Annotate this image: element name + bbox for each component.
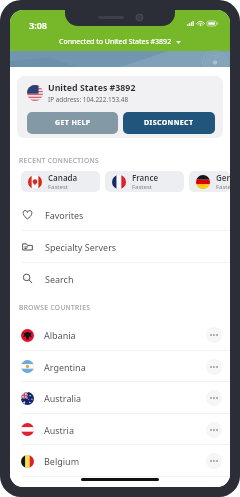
staticText: Fastest <box>216 183 230 191</box>
staticText: DISCONNECT <box>144 118 194 128</box>
button[interactable]: Connected to United States #3892 <box>59 37 181 47</box>
staticText: Fastest <box>48 183 68 191</box>
button[interactable]: More options for Argentina <box>206 359 222 375</box>
button[interactable]: More options for Albania <box>206 327 222 343</box>
staticText: Belgium <box>44 455 80 467</box>
button[interactable]: More options for Belgium <box>206 453 222 469</box>
button[interactable]: Favorites <box>10 199 230 230</box>
button[interactable]: Albania <box>10 319 230 351</box>
staticText: France <box>132 172 159 183</box>
button[interactable]: DISCONNECT <box>123 112 215 134</box>
staticText: Australia <box>44 392 82 404</box>
button[interactable]: France <box>105 171 184 192</box>
staticText: Canada <box>48 172 78 183</box>
button[interactable]: Argentina <box>10 351 230 382</box>
staticText: Specialty Servers <box>45 241 117 253</box>
button[interactable]: More options for Austria <box>206 422 222 438</box>
staticText: Albania <box>44 329 76 341</box>
button[interactable]: United States #3892 <box>17 76 223 138</box>
staticText: Fastest <box>132 183 152 191</box>
staticText: Austria <box>44 424 74 436</box>
staticText: IP address: 104.222.153.48 <box>48 95 129 104</box>
staticText: 3:08 <box>29 19 47 31</box>
staticText: Search <box>45 273 74 285</box>
staticText: BROWSE COUNTRIES <box>19 303 91 312</box>
button[interactable]: Canada <box>21 171 100 192</box>
button[interactable]: Belgium <box>10 445 230 477</box>
staticText: Connected to United States #3892 <box>59 37 172 47</box>
staticText: Argentina <box>44 361 86 373</box>
button[interactable]: Germany <box>189 171 230 192</box>
button[interactable]: Search <box>10 263 230 294</box>
staticText: Germany <box>216 172 230 183</box>
staticText: RECENT CONNECTIONS <box>19 156 99 165</box>
button[interactable]: GET HELP <box>27 112 118 134</box>
staticText: Favorites <box>45 209 84 221</box>
button[interactable]: Australia <box>10 382 230 414</box>
button[interactable]: Austria <box>10 414 230 445</box>
button[interactable]: Specialty Servers <box>10 231 230 262</box>
staticText: United States #3892 <box>48 82 136 94</box>
button[interactable]: More options for Australia <box>206 390 222 406</box>
staticText: GET HELP <box>55 118 91 128</box>
